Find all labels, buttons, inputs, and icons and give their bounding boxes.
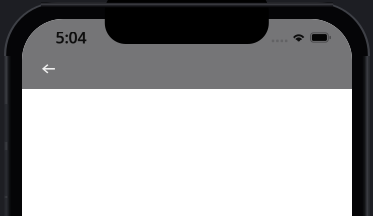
button[interactable]: Back — [29, 52, 69, 86]
staticText: 5:04 — [55, 27, 86, 48]
